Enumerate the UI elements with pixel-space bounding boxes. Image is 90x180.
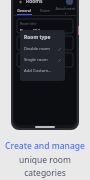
staticText: Double room: [24, 46, 50, 52]
staticText: Capacity: [20, 55, 34, 60]
button[interactable]: General: [14, 6, 34, 14]
staticText: Rooms: [26, 0, 43, 5]
button[interactable]: Single room: [24, 57, 61, 63]
button[interactable]: Double room: [24, 46, 61, 52]
button[interactable]: Edit Single room: [57, 58, 61, 62]
button[interactable]: Room title: [17, 19, 73, 33]
button[interactable]: Attachments: [55, 6, 76, 14]
staticText: Add Custom...: [24, 68, 52, 74]
button[interactable]: Rates: [34, 6, 55, 14]
staticText: Room type: [24, 34, 51, 41]
staticText: categories: [24, 167, 66, 179]
staticText: Room type: [20, 38, 38, 43]
button[interactable]: Back: [17, 0, 24, 5]
staticText: Rates: [40, 8, 50, 13]
staticText: Room 104: [20, 28, 40, 31]
staticText: Single room: [24, 57, 48, 63]
staticText: Room title: [20, 21, 37, 26]
staticText: Create and manage: [5, 140, 85, 152]
staticText: unique room: [19, 154, 71, 166]
button[interactable]: Profile: [66, 0, 73, 5]
staticText: General: [17, 8, 31, 13]
button[interactable]: Room type: [17, 36, 73, 50]
staticText: Attachments: [55, 6, 76, 14]
button[interactable]: Add Custom...: [24, 68, 61, 74]
button[interactable]: Capacity: [17, 53, 73, 67]
button[interactable]: Edit Double room: [57, 47, 61, 51]
